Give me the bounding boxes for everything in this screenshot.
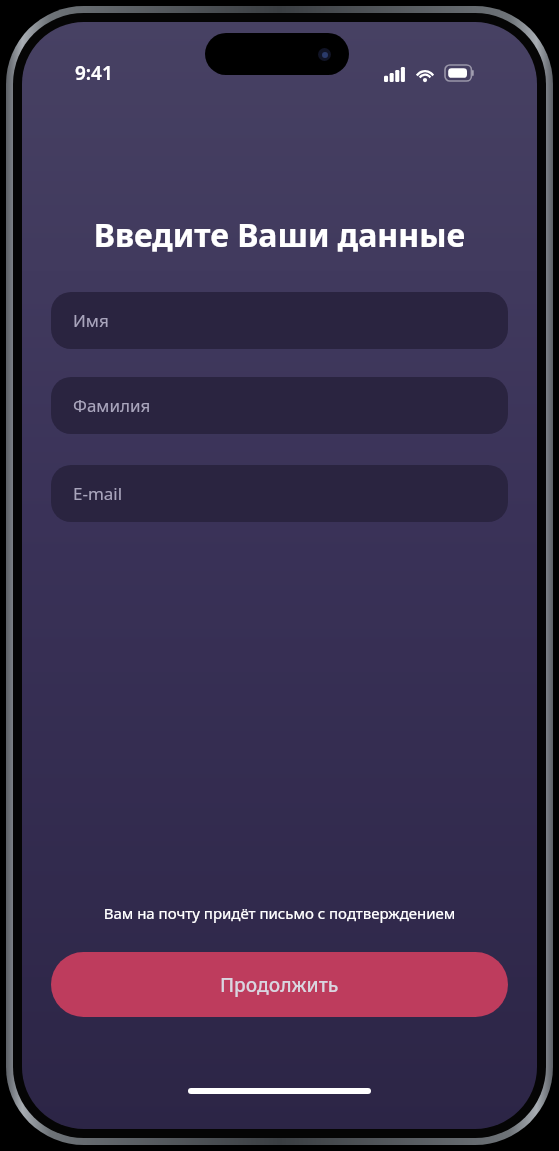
- staticText: Введите Ваши данные: [51, 213, 508, 257]
- staticText: Продолжить: [220, 972, 339, 998]
- button[interactable]: Фамилия: [51, 377, 508, 434]
- staticText: Вам на почту придёт письмо с подтвержден…: [42, 903, 517, 923]
- staticText: Имя: [73, 309, 109, 332]
- button[interactable]: Имя: [51, 292, 508, 349]
- staticText: E-mail: [73, 482, 123, 505]
- button[interactable]: Продолжить: [51, 952, 508, 1017]
- staticText: Фамилия: [73, 394, 151, 417]
- staticText: 9:41: [75, 60, 113, 86]
- button[interactable]: E-mail: [51, 465, 508, 522]
